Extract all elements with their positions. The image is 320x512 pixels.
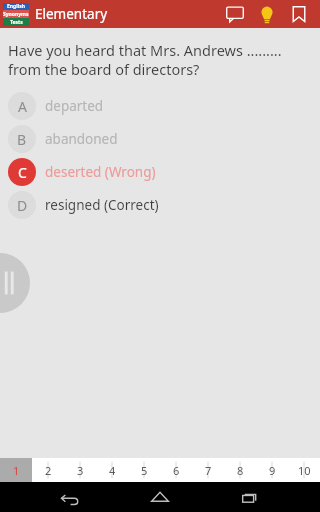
staticText: 7 [205,463,212,478]
staticText: A [18,97,27,116]
button[interactable]: English Synonyms Tests [3,3,29,26]
staticText: 6 [173,463,180,478]
button[interactable]: 10 [288,458,320,482]
button[interactable]: Back [47,482,91,512]
button[interactable]: Bookmark [288,3,310,25]
button[interactable]: D [0,188,320,221]
staticText: resigned (Correct) [45,196,159,214]
button[interactable]: 2 [32,458,64,482]
button[interactable]: 7 [192,458,224,482]
button[interactable]: 5 [128,458,160,482]
staticText: departed [45,97,104,115]
button[interactable]: Home [138,482,182,512]
button[interactable]: 3 [64,458,96,482]
button[interactable]: Pause [0,253,30,313]
staticText: C [18,163,27,182]
staticText: B [17,130,27,149]
staticText: English [7,3,25,10]
staticText: D [17,196,28,215]
staticText: Synonyms [3,11,29,18]
staticText: 5 [141,463,148,478]
staticText: 4 [109,463,116,478]
staticText: deserted (Wrong) [45,163,156,181]
button[interactable]: 4 [96,458,128,482]
button[interactable]: B [0,122,320,155]
button[interactable]: Comments [224,3,246,25]
button[interactable]: C [0,155,320,188]
staticText: Tests [10,19,23,26]
button[interactable]: 6 [160,458,192,482]
staticText: 1 [13,463,20,478]
staticText: abandoned [45,130,118,148]
staticText: 3 [77,463,84,478]
staticText: 10 [298,463,311,478]
button[interactable]: 1 [0,458,32,482]
staticText: 8 [237,463,244,478]
button[interactable]: A [0,89,320,122]
staticText: Have you heard that Mrs. Andrews .......… [8,40,310,79]
button[interactable]: 9 [256,458,288,482]
staticText: 9 [269,463,276,478]
staticText: 2 [45,463,52,478]
button[interactable]: Recents [229,482,273,512]
button[interactable]: 8 [224,458,256,482]
button[interactable]: Hint [256,3,278,25]
staticText: Elementary [35,5,108,23]
